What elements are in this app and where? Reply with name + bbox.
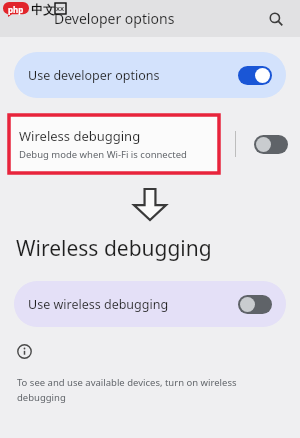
staticText: To see and use available devices, turn o… [17, 376, 237, 389]
staticText: Wireless debugging [19, 127, 141, 145]
button[interactable]: Toggle off [238, 295, 272, 314]
other: Information [17, 344, 32, 359]
button[interactable]: Toggle off [254, 135, 288, 154]
staticText: Wireless debugging [16, 234, 212, 263]
staticText: debugging [17, 391, 66, 404]
staticText: 中文 [31, 2, 55, 17]
staticText: Use developer options [28, 67, 160, 84]
button[interactable]: Search [262, 5, 290, 33]
staticText: php [8, 4, 24, 15]
button[interactable]: Use developer options [14, 52, 286, 98]
staticText: Use wireless debugging [28, 296, 169, 313]
button[interactable]: Wireless debugging [9, 115, 219, 173]
button[interactable]: Toggle on [238, 66, 272, 85]
button[interactable]: Use wireless debugging [14, 281, 286, 327]
staticText: XX [56, 5, 65, 13]
button[interactable]: Toggle off [254, 135, 288, 154]
staticText: Debug mode when Wi-Fi is connected [19, 148, 187, 161]
staticText: Developer options [54, 9, 175, 28]
